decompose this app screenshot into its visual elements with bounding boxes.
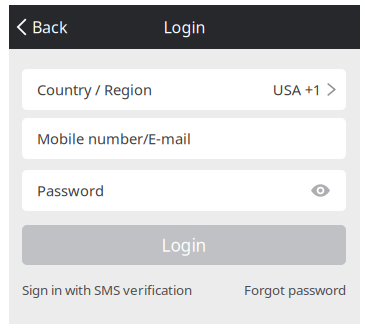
staticText: Login [161,233,206,256]
staticText: Back [32,16,68,38]
staticText: Password [37,181,104,200]
button[interactable]: Mobile number/E-mail [22,118,346,159]
button[interactable]: Login [22,225,346,265]
staticText: Mobile number/E-mail [37,129,191,148]
staticText: Country / Region [37,80,152,99]
staticText: Login [163,16,205,38]
button[interactable]: Forgot password [244,281,346,299]
button[interactable]: Back [9,5,80,49]
staticText: Forgot password [244,281,346,299]
button[interactable]: Password [22,170,299,211]
button[interactable]: Sign in with SMS verification [22,281,192,299]
button[interactable]: Country / Region [22,69,346,110]
staticText: Sign in with SMS verification [22,281,192,299]
button[interactable]: Show password [299,170,346,211]
staticText: USA +1 [273,80,321,99]
